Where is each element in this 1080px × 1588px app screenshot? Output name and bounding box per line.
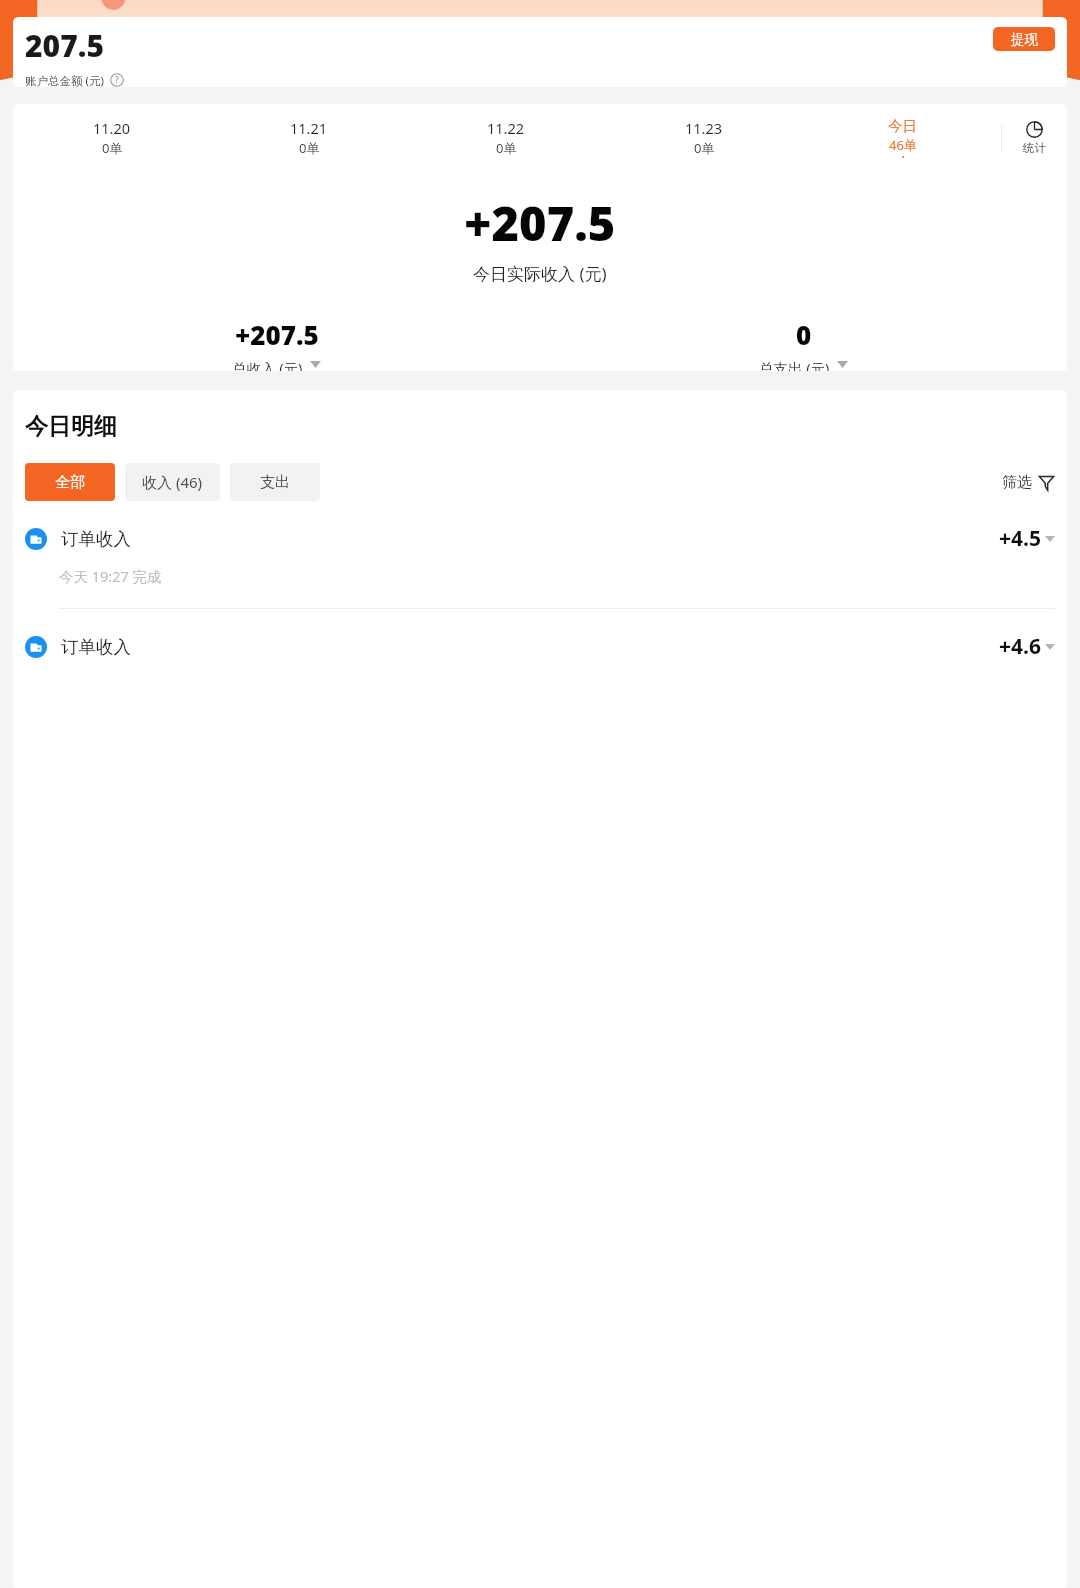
- staticText: 今天 19:27 完成: [59, 566, 162, 586]
- button[interactable]: 筛选: [1002, 473, 1055, 492]
- staticText: 207.5: [25, 25, 104, 66]
- staticText: +4.5: [999, 524, 1041, 553]
- button[interactable]: 统计: [1002, 117, 1067, 158]
- button[interactable]: 帮助说明: [110, 73, 124, 87]
- staticText: 统计: [1023, 141, 1046, 155]
- staticText: 0单: [102, 139, 123, 157]
- button[interactable]: 提现: [993, 27, 1055, 51]
- staticText: 11.21: [290, 118, 328, 138]
- staticText: 11.23: [685, 118, 723, 138]
- staticText: 订单收入: [61, 528, 131, 550]
- staticText: 总支出 (元): [759, 358, 830, 371]
- staticText: 46单: [889, 136, 917, 154]
- button[interactable]: 订单收入: [13, 524, 1067, 553]
- button[interactable]: 11.20: [13, 117, 210, 158]
- button[interactable]: 订单收入: [13, 632, 1067, 661]
- staticText: 提现: [1011, 31, 1038, 48]
- button[interactable]: 总收入 (元): [232, 358, 321, 371]
- button[interactable]: 今日: [803, 117, 1001, 158]
- staticText: 11.22: [487, 118, 525, 138]
- staticText: 收入 (46): [142, 472, 203, 492]
- staticText: 0单: [694, 139, 715, 157]
- button[interactable]: 11.21: [210, 117, 407, 158]
- button[interactable]: 收入 (46): [125, 463, 220, 501]
- button[interactable]: 支出: [230, 463, 320, 501]
- staticText: 全部: [55, 473, 85, 492]
- button[interactable]: 11.22: [407, 117, 605, 158]
- staticText: 总收入 (元): [232, 358, 303, 371]
- staticText: 11.20: [93, 118, 131, 138]
- button[interactable]: 11.23: [605, 117, 803, 158]
- staticText: +207.5: [464, 191, 616, 255]
- staticText: +207.5: [235, 317, 319, 352]
- staticText: 支出: [260, 473, 290, 492]
- staticText: 0单: [299, 139, 320, 157]
- staticText: 0单: [496, 139, 517, 157]
- staticText: +4.6: [999, 632, 1041, 661]
- button[interactable]: 全部: [25, 463, 115, 501]
- staticText: 账户总金额 (元): [25, 73, 104, 87]
- staticText: 筛选: [1002, 473, 1032, 492]
- staticText: 今日实际收入 (元): [473, 262, 607, 285]
- staticText: ?: [115, 74, 119, 86]
- staticText: 今日明细: [25, 412, 117, 441]
- staticText: 订单收入: [61, 636, 131, 658]
- button[interactable]: 总支出 (元): [759, 358, 848, 371]
- staticText: 今日: [888, 117, 917, 135]
- staticText: 0: [796, 317, 812, 352]
